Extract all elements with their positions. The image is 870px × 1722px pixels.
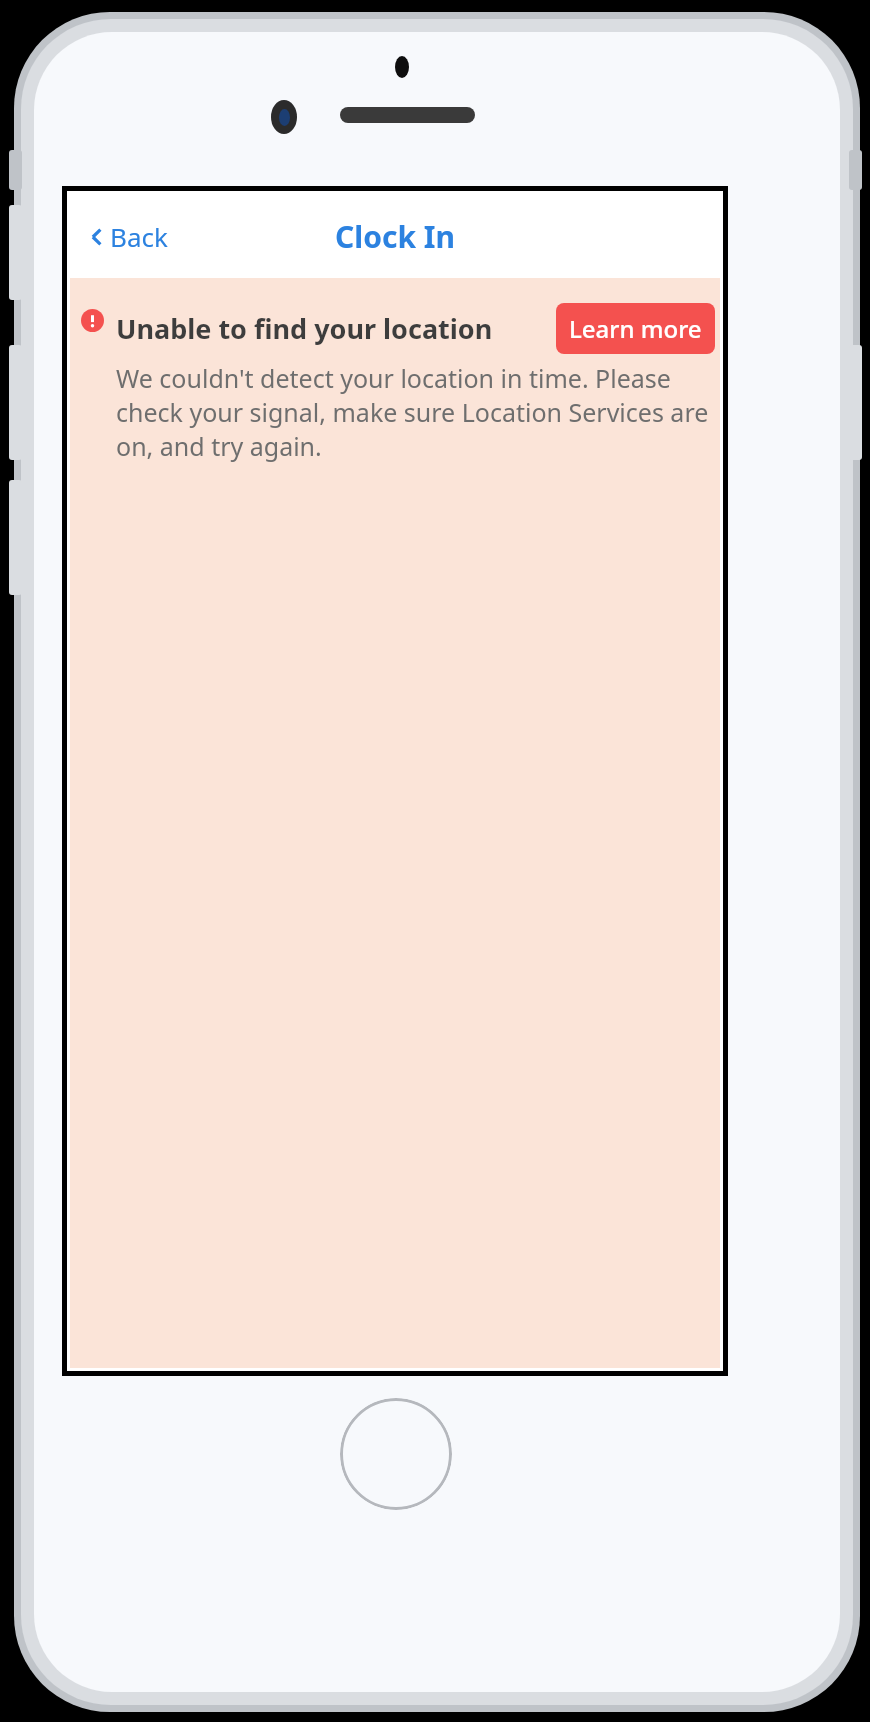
- other: Error: [81, 309, 104, 332]
- staticText: Unable to find your location: [116, 310, 556, 347]
- button[interactable]: Home: [340, 1398, 452, 1510]
- button[interactable]: Learn more: [556, 303, 715, 354]
- button[interactable]: Back: [84, 211, 174, 262]
- staticText: Back: [110, 219, 168, 254]
- staticText: We couldn't detect your location in time…: [116, 361, 712, 463]
- staticText: Clock In: [335, 216, 455, 257]
- staticText: Learn more: [569, 312, 702, 345]
